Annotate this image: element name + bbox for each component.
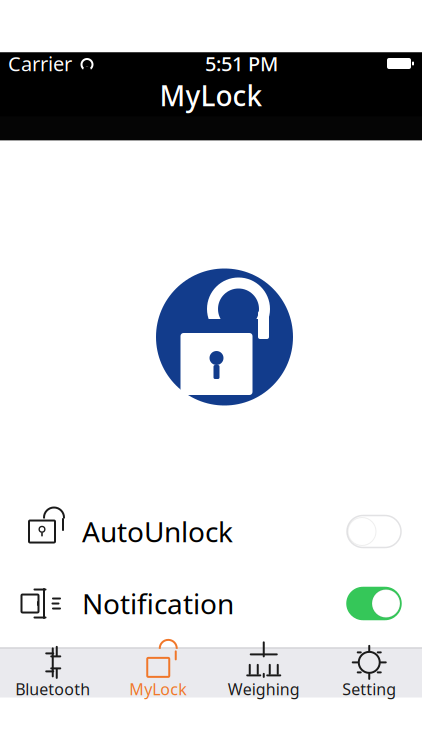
- staticText: Carrier: [8, 50, 72, 77]
- staticText: MyLock: [129, 678, 187, 700]
- button[interactable]: Bluetooth: [0, 643, 105, 703]
- staticText: 5:51 PM: [205, 50, 278, 77]
- button[interactable]: MyLock: [105, 643, 211, 703]
- staticText: Weighing: [228, 678, 300, 700]
- staticText: Bluetooth: [15, 678, 90, 700]
- staticText: Notification: [82, 585, 234, 622]
- button[interactable]: Weighing: [211, 643, 316, 703]
- button[interactable]: AutoUnlock: [0, 495, 422, 567]
- staticText: Setting: [342, 678, 396, 700]
- button[interactable]: Setting: [316, 643, 422, 703]
- staticText: AutoUnlock: [82, 513, 233, 550]
- button[interactable]: Notification: [0, 567, 422, 639]
- staticText: MyLock: [159, 77, 262, 114]
